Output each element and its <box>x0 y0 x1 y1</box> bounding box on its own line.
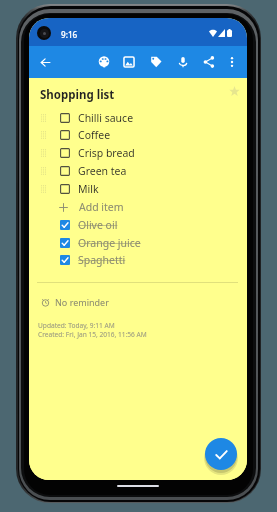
button[interactable]: Spaghetti <box>29 250 247 270</box>
staticText: Chilli sauce <box>78 111 134 125</box>
button[interactable]: More options <box>219 49 245 75</box>
button[interactable]: Milk <box>29 179 247 199</box>
button[interactable]: Coffee <box>29 125 247 145</box>
button[interactable]: Crisp bread <box>29 143 247 163</box>
staticText: Shopping list <box>40 87 115 103</box>
button[interactable]: Done <box>205 438 237 470</box>
button[interactable]: Share <box>196 49 222 75</box>
button[interactable]: Green tea <box>29 161 247 181</box>
staticText: No reminder <box>55 296 109 308</box>
staticText: Milk <box>78 182 99 196</box>
button[interactable]: Voice note <box>170 49 196 75</box>
staticText: Updated: Today, 9:11 AM <box>38 321 115 330</box>
button[interactable]: Add item <box>29 198 247 216</box>
staticText: Coffee <box>78 128 111 142</box>
button[interactable]: Pin note <box>225 82 243 100</box>
staticText: Olive oil <box>78 218 118 232</box>
button[interactable]: Add image <box>116 49 142 75</box>
staticText: 9:16 <box>61 29 78 40</box>
staticText: Crisp bread <box>78 146 135 160</box>
button[interactable]: Orange juice <box>29 233 247 253</box>
button[interactable]: Back <box>32 49 58 75</box>
button[interactable]: No reminder <box>41 294 109 310</box>
button[interactable]: Olive oil <box>29 215 247 235</box>
button[interactable]: Label <box>143 49 169 75</box>
staticText: Orange juice <box>78 236 141 250</box>
staticText: Add item <box>79 200 124 214</box>
button[interactable]: Chilli sauce <box>29 108 247 128</box>
staticText: Green tea <box>78 164 127 178</box>
staticText: Spaghetti <box>78 253 126 267</box>
staticText: Created: Fri, Jan 15, 2016, 11:56 AM <box>38 330 147 339</box>
button[interactable]: Change color <box>91 49 117 75</box>
